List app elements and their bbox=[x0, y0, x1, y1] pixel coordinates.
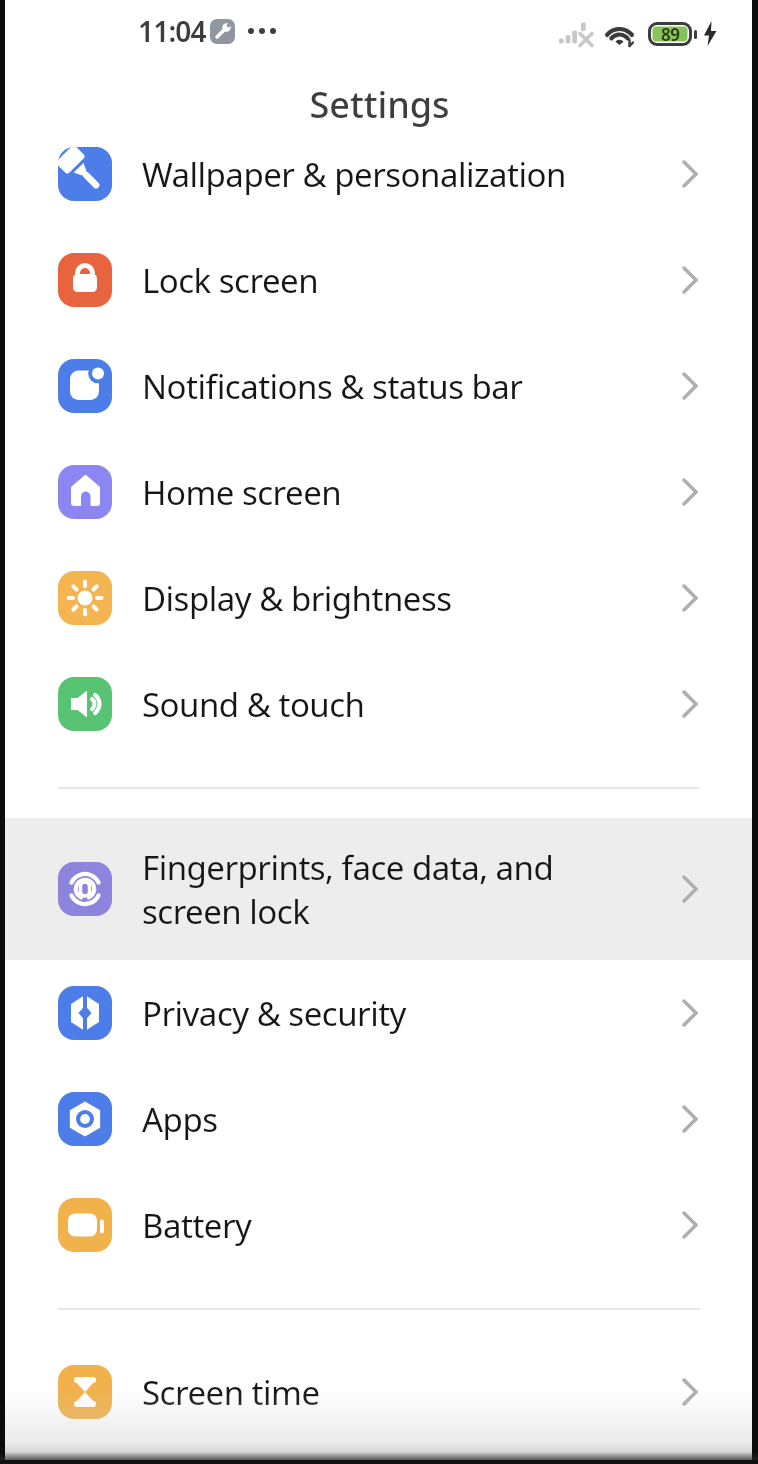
button[interactable]: Screen time bbox=[0, 1339, 758, 1445]
staticText: Wallpaper & personalization bbox=[142, 152, 566, 197]
button[interactable]: Battery bbox=[0, 1172, 758, 1278]
button[interactable]: Notifications & status bar bbox=[0, 333, 758, 439]
staticText: Fingerprints, face data, and screen lock bbox=[142, 845, 554, 933]
staticText: Battery bbox=[142, 1203, 252, 1248]
staticText: Privacy & security bbox=[142, 991, 406, 1036]
staticText: Lock screen bbox=[142, 258, 319, 303]
staticText: Apps bbox=[142, 1097, 218, 1142]
button[interactable]: Lock screen bbox=[0, 227, 758, 333]
staticText: Home screen bbox=[142, 470, 342, 515]
staticText: Notifications & status bar bbox=[142, 364, 523, 409]
staticText: Display & brightness bbox=[142, 576, 452, 621]
staticText: 11:04 bbox=[138, 12, 206, 50]
staticText: Settings bbox=[309, 80, 450, 129]
staticText: Sound & touch bbox=[142, 682, 365, 727]
button[interactable]: Fingerprints, face data, and screen lock bbox=[0, 818, 758, 960]
button[interactable]: Home screen bbox=[0, 439, 758, 545]
button[interactable]: Wallpaper & personalization bbox=[0, 121, 758, 227]
button[interactable]: Privacy & security bbox=[0, 960, 758, 1066]
button[interactable]: Sound & touch bbox=[0, 651, 758, 757]
button[interactable]: Apps bbox=[0, 1066, 758, 1172]
staticText: 89 bbox=[661, 23, 680, 46]
button[interactable]: Display & brightness bbox=[0, 545, 758, 651]
staticText: Screen time bbox=[142, 1370, 320, 1415]
